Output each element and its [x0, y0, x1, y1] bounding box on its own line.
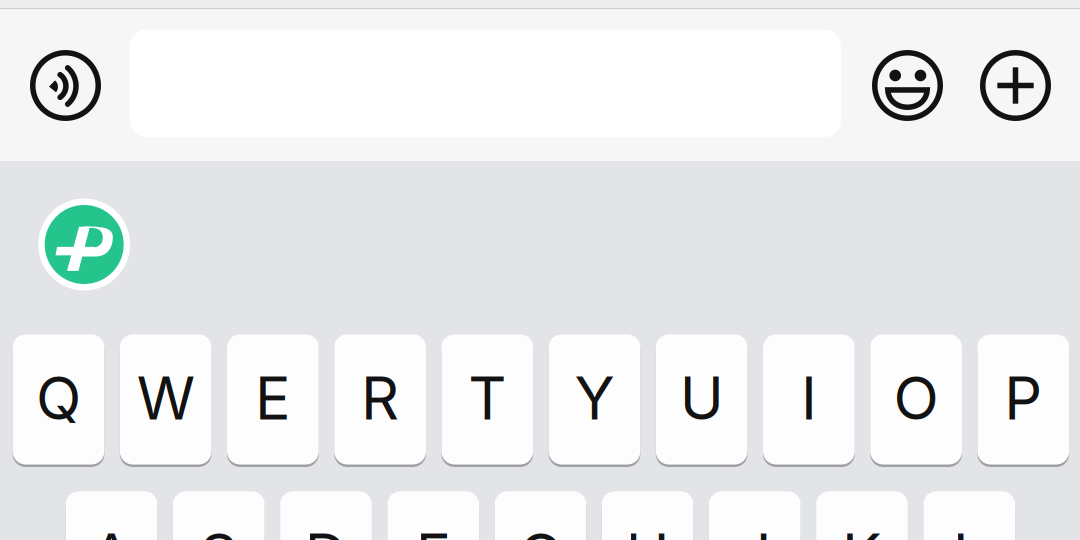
button[interactable]: Y [549, 333, 640, 466]
button[interactable]: Stickers and emoji [872, 50, 943, 121]
button[interactable]: H [602, 490, 693, 540]
button[interactable]: W [120, 333, 212, 466]
staticText: R [361, 362, 399, 434]
button[interactable]: L [923, 490, 1015, 540]
button[interactable]: A [66, 490, 157, 540]
staticText: Y [574, 362, 614, 434]
button[interactable]: O [870, 333, 962, 466]
button[interactable]: Record audio message [30, 50, 101, 121]
staticText: S [200, 519, 238, 540]
staticText: T [468, 362, 506, 434]
staticText: J [738, 519, 772, 540]
button[interactable]: K [816, 490, 908, 540]
staticText: D [304, 519, 347, 540]
button[interactable]: R [334, 333, 426, 466]
button[interactable]: T [441, 333, 533, 466]
staticText: E [255, 362, 291, 434]
staticText: F [416, 519, 451, 540]
button[interactable]: Add attachment [980, 50, 1051, 121]
staticText: G [518, 519, 562, 540]
staticText: O [894, 362, 939, 434]
staticText: H [626, 519, 670, 540]
staticText: Q [36, 362, 81, 434]
button[interactable]: Q [13, 333, 104, 466]
button[interactable]: D [280, 490, 372, 540]
staticText: A [91, 519, 132, 540]
staticText: K [842, 519, 882, 540]
button[interactable]: I [763, 333, 855, 466]
staticText: P [1004, 362, 1042, 434]
staticText: L [953, 519, 986, 540]
staticText: U [680, 362, 724, 434]
button[interactable]: E [227, 333, 319, 466]
button[interactable]: G [494, 490, 586, 540]
staticText: I [801, 362, 817, 434]
button[interactable]: S [173, 490, 265, 540]
button[interactable]: U [656, 333, 748, 466]
button[interactable]: F [387, 490, 479, 540]
button[interactable]: J [709, 490, 801, 540]
staticText: W [137, 362, 195, 434]
button[interactable]: P [977, 333, 1069, 466]
